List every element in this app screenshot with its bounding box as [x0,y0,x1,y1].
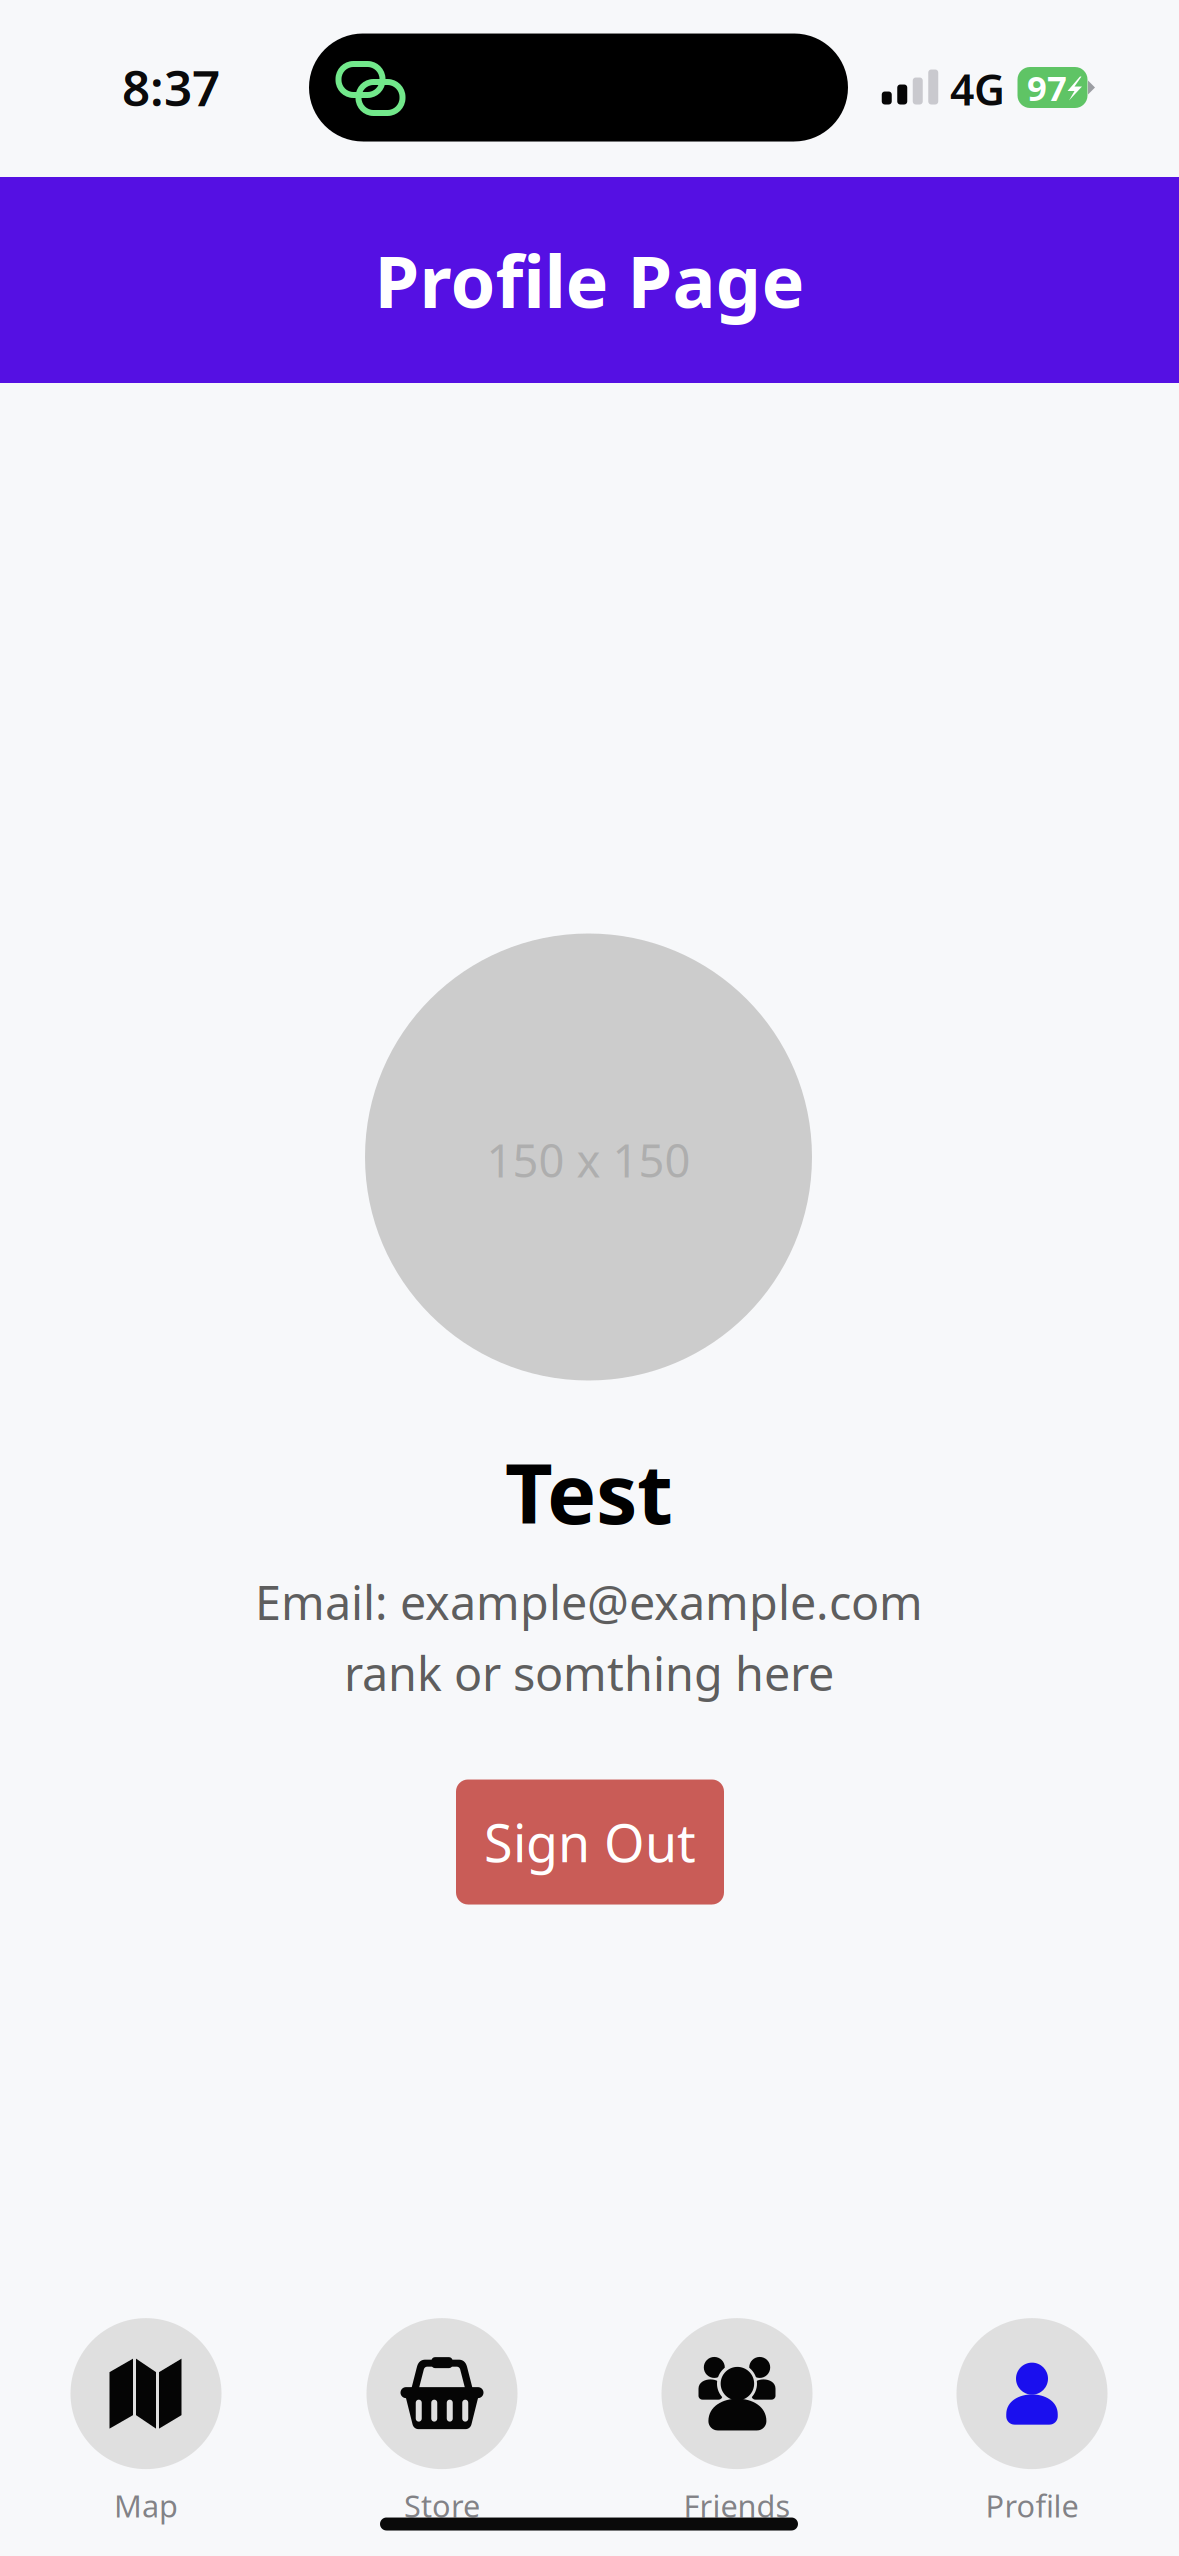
staticText: Sign Out [484,1807,696,1877]
staticText: Profile Page [374,232,804,328]
staticText: 150 x 150 [486,1130,690,1190]
button[interactable]: Map [70,2318,221,2526]
staticText: 8:37 [122,54,220,120]
button[interactable]: Sign Out [456,1779,724,1904]
staticText: Store [404,2485,480,2526]
staticText: Friends [683,2485,790,2526]
staticText: rank or somthing here [344,1642,834,1704]
button[interactable]: Profile [956,2318,1107,2526]
staticText: 97 [1027,64,1067,110]
button[interactable]: Store [366,2318,517,2526]
staticText: Map [114,2485,178,2526]
button[interactable]: Friends [661,2318,812,2526]
staticText: Profile [985,2485,1078,2526]
staticText: Email: example@example.com [255,1571,923,1633]
staticText: Test [505,1437,673,1547]
staticText: 4G [950,61,1005,117]
